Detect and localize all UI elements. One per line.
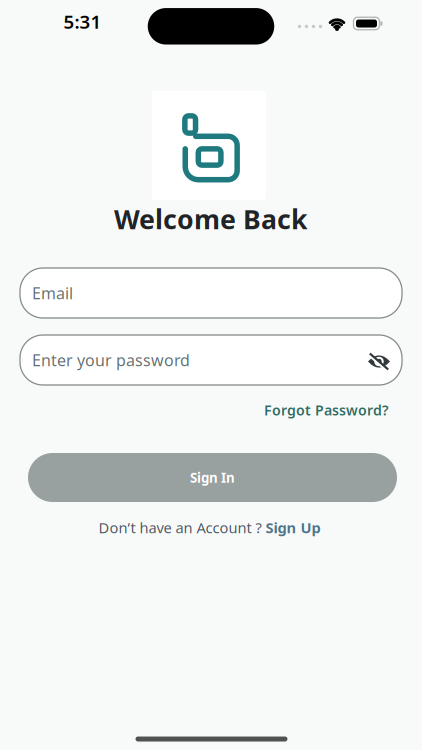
button[interactable]: Show password (367, 351, 391, 371)
button[interactable]: Sign In (28, 453, 397, 502)
staticText: Don’t have an Account ? (98, 518, 265, 537)
staticText: Sign In (190, 469, 235, 486)
staticText: Email (32, 282, 73, 304)
staticText: Enter your password (32, 349, 190, 371)
staticText: Forgot Password? (264, 400, 389, 420)
button[interactable]: Email (20, 268, 402, 318)
staticText: Sign Up (265, 518, 320, 537)
button[interactable]: Forgot Password? (264, 400, 389, 420)
staticText: Welcome Back (114, 201, 308, 237)
button[interactable]: Sign Up (265, 518, 320, 537)
button[interactable]: Enter your password (20, 335, 402, 385)
staticText: 5:31 (63, 9, 101, 34)
